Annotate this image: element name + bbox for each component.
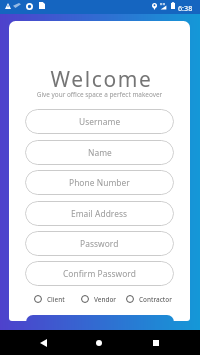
button[interactable]: Email Address <box>25 201 174 226</box>
staticText: Confirm Password <box>63 268 136 279</box>
staticText: Client <box>47 295 65 304</box>
button[interactable]: Home <box>88 332 110 354</box>
staticText: Name <box>88 147 112 158</box>
button[interactable]: Phone Number <box>25 170 174 195</box>
button[interactable]: Name <box>25 140 174 165</box>
staticText: Phone Number <box>69 177 130 188</box>
staticText: Welcome <box>11 65 190 94</box>
button[interactable]: Contractor <box>126 291 172 307</box>
button[interactable]: Back <box>32 332 54 354</box>
staticText: Vendor <box>94 295 117 304</box>
staticText: 6:38 <box>178 3 193 13</box>
button[interactable]: Client <box>34 291 65 307</box>
button[interactable]: Confirm Password <box>25 261 174 286</box>
staticText: Username <box>79 116 121 127</box>
button[interactable]: Recent apps <box>145 332 167 354</box>
button[interactable]: Register <box>26 315 174 331</box>
staticText: Email Address <box>71 208 128 219</box>
button[interactable]: Password <box>25 231 174 256</box>
staticText: Password <box>80 238 119 249</box>
button[interactable]: Username <box>25 109 174 134</box>
staticText: Give your office space a perfect makeove… <box>9 90 190 99</box>
button[interactable]: Vendor <box>81 291 117 307</box>
staticText: Contractor <box>139 295 172 304</box>
